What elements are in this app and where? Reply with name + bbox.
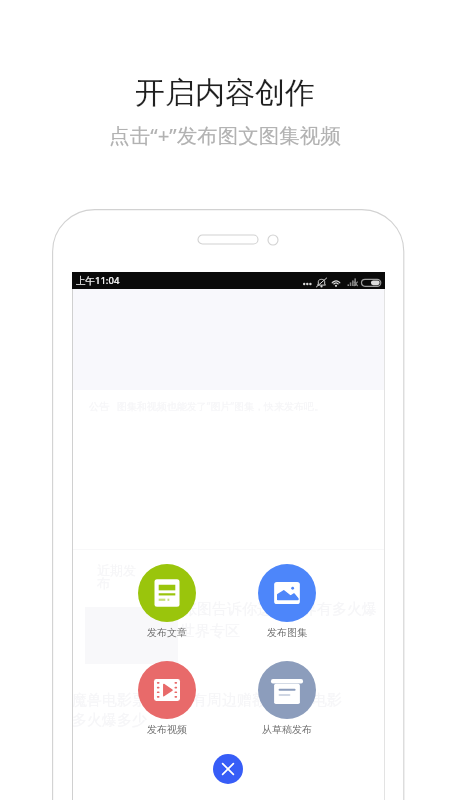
- staticText: 发布图集: [267, 626, 307, 639]
- staticText: 魔兽电影票房外还有周边赠额外现象电影: [72, 691, 342, 710]
- staticText: 开启内容创作: [135, 74, 315, 112]
- staticText: 发布视频: [147, 723, 187, 736]
- staticText: 发布文章: [147, 626, 187, 639]
- staticText: 公告 图集和视频也能发了“图片”图集，快来发布吧。: [89, 399, 324, 413]
- staticText: 从草稿发布: [262, 723, 312, 736]
- button[interactable]: 发布视频: [127, 661, 207, 736]
- button[interactable]: 发布图集: [247, 564, 327, 639]
- staticText: 近期发 布: [97, 562, 136, 592]
- staticText: 世界专区: [180, 622, 240, 641]
- button[interactable]: Close: [213, 754, 243, 784]
- button[interactable]: 从草稿发布: [247, 661, 327, 736]
- staticText: 上午11:04: [76, 274, 120, 287]
- staticText: 张图告诉你这个世界有多火爆: [182, 600, 377, 619]
- staticText: 多火爆多少: [72, 711, 147, 730]
- staticText: 点击“+”发布图文图集视频: [109, 121, 341, 149]
- button[interactable]: 发布文章: [127, 564, 207, 639]
